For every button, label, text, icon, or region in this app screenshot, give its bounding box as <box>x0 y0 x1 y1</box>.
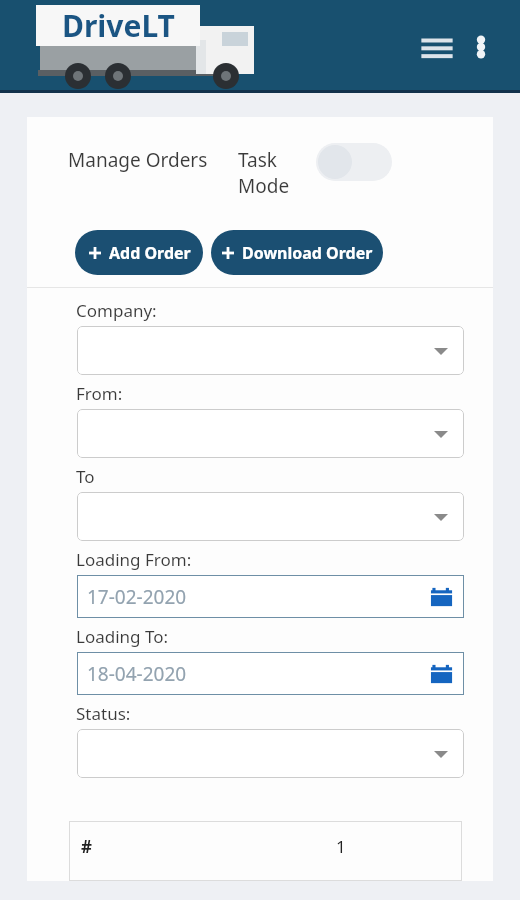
button[interactable]: Dropdown <box>77 326 464 375</box>
staticText: To <box>76 465 95 488</box>
button[interactable]: Add Order <box>75 230 203 275</box>
staticText: Company: <box>76 299 157 322</box>
staticText: From: <box>76 382 123 405</box>
staticText: Add Order <box>109 242 191 264</box>
staticText: Download Order <box>242 242 373 264</box>
staticText: Loading To: <box>76 625 169 648</box>
staticText: Loading From: <box>76 548 192 571</box>
staticText: 18-04-2020 <box>87 661 187 687</box>
other: Pick date <box>430 585 454 609</box>
staticText: 17-02-2020 <box>87 584 187 610</box>
staticText: Status: <box>76 702 131 725</box>
button[interactable]: 18-04-2020 <box>77 652 464 695</box>
button[interactable]: More options <box>460 26 502 68</box>
staticText: Task Mode <box>238 147 290 199</box>
button[interactable]: Menu <box>414 24 460 70</box>
button[interactable]: Task Mode toggle <box>316 143 392 181</box>
other: Pick date <box>430 662 454 686</box>
button[interactable]: Dropdown <box>77 409 464 458</box>
button[interactable]: Dropdown <box>77 729 464 778</box>
staticText: # <box>81 835 92 858</box>
button[interactable]: Download Order <box>211 230 383 275</box>
staticText: 1 <box>336 835 346 858</box>
staticText: Manage Orders <box>68 147 208 173</box>
staticText: DriveLT <box>62 5 175 46</box>
button[interactable]: Dropdown <box>77 492 464 541</box>
button[interactable]: 17-02-2020 <box>77 575 464 618</box>
